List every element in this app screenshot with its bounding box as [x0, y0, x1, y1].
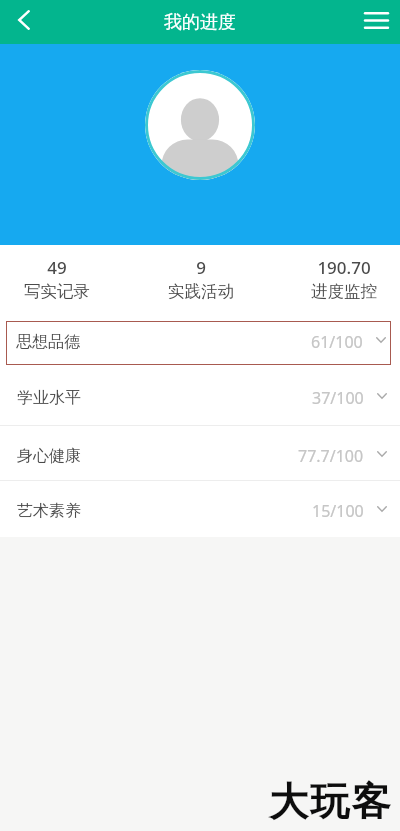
button[interactable]: 思想品德	[6, 321, 391, 365]
button[interactable]: Menu	[352, 0, 400, 44]
staticText: 实践活动	[168, 281, 234, 302]
button[interactable]: 艺术素养	[0, 481, 400, 537]
staticText: 大玩客	[269, 777, 393, 826]
staticText: 49	[47, 256, 67, 279]
staticText: 艺术素养	[17, 501, 81, 521]
button[interactable]: 学业水平	[0, 365, 400, 426]
staticText: 37/100	[312, 387, 364, 409]
button[interactable]: 49	[7, 256, 107, 302]
staticText: 进度监控	[311, 281, 377, 302]
button[interactable]: 身心健康	[0, 426, 400, 481]
button[interactable]: Back	[0, 0, 48, 44]
staticText: 9	[196, 256, 206, 279]
button[interactable]: 9	[151, 256, 251, 302]
staticText: 77.7/100	[298, 445, 364, 467]
staticText: 我的进度	[164, 11, 236, 34]
button[interactable]: Avatar	[145, 70, 255, 180]
staticText: 190.70	[317, 256, 371, 279]
staticText: 身心健康	[17, 446, 81, 466]
staticText: 61/100	[311, 331, 363, 353]
staticText: 思想品德	[16, 332, 80, 352]
staticText: 学业水平	[17, 388, 81, 408]
staticText: 写实记录	[24, 281, 90, 302]
staticText: 15/100	[312, 500, 364, 522]
button[interactable]: 190.70	[294, 256, 394, 302]
